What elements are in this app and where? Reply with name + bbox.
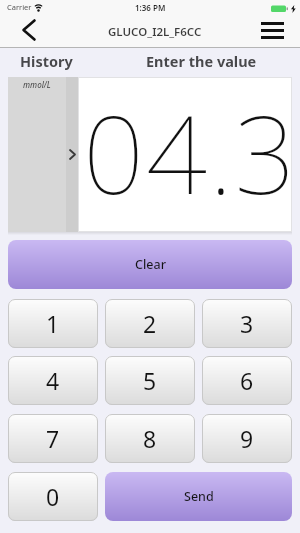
staticText: 1:36 PM: [135, 2, 166, 13]
staticText: 04.3: [83, 80, 297, 226]
staticText: 0: [46, 481, 60, 512]
button[interactable]: 8: [105, 414, 195, 463]
button[interactable]: 9: [202, 414, 292, 463]
staticText: Send: [184, 488, 214, 505]
button[interactable]: 5: [105, 356, 195, 405]
button[interactable]: Send: [105, 472, 292, 521]
staticText: 1: [46, 308, 60, 339]
staticText: 5: [143, 365, 157, 396]
staticText: 3: [240, 308, 254, 339]
button[interactable]: History: [0, 48, 93, 77]
button[interactable]: [12, 14, 46, 46]
staticText: GLUCO_I2L_F6CC: [108, 24, 202, 40]
button[interactable]: 7: [8, 414, 98, 463]
staticText: 2: [143, 308, 157, 339]
staticText: History: [20, 51, 73, 71]
staticText: Carrier: [7, 2, 32, 12]
staticText: 8: [143, 423, 157, 454]
button[interactable]: Clear: [8, 240, 292, 289]
staticText: 9: [240, 423, 254, 454]
staticText: Enter the value: [146, 51, 257, 71]
staticText: 4: [46, 365, 60, 396]
staticText: Clear: [135, 256, 166, 273]
staticText: 6: [240, 365, 254, 396]
button[interactable]: 4: [8, 356, 98, 405]
button[interactable]: 2: [105, 299, 195, 348]
button[interactable]: mmol/L: [8, 77, 66, 232]
button[interactable]: 6: [202, 356, 292, 405]
button[interactable]: 3: [202, 299, 292, 348]
button[interactable]: 0: [8, 472, 98, 521]
staticText: 7: [46, 423, 60, 454]
button[interactable]: 1: [8, 299, 98, 348]
button[interactable]: Enter the value: [93, 48, 300, 77]
button[interactable]: [252, 14, 292, 46]
staticText: mmol/L: [23, 79, 51, 90]
